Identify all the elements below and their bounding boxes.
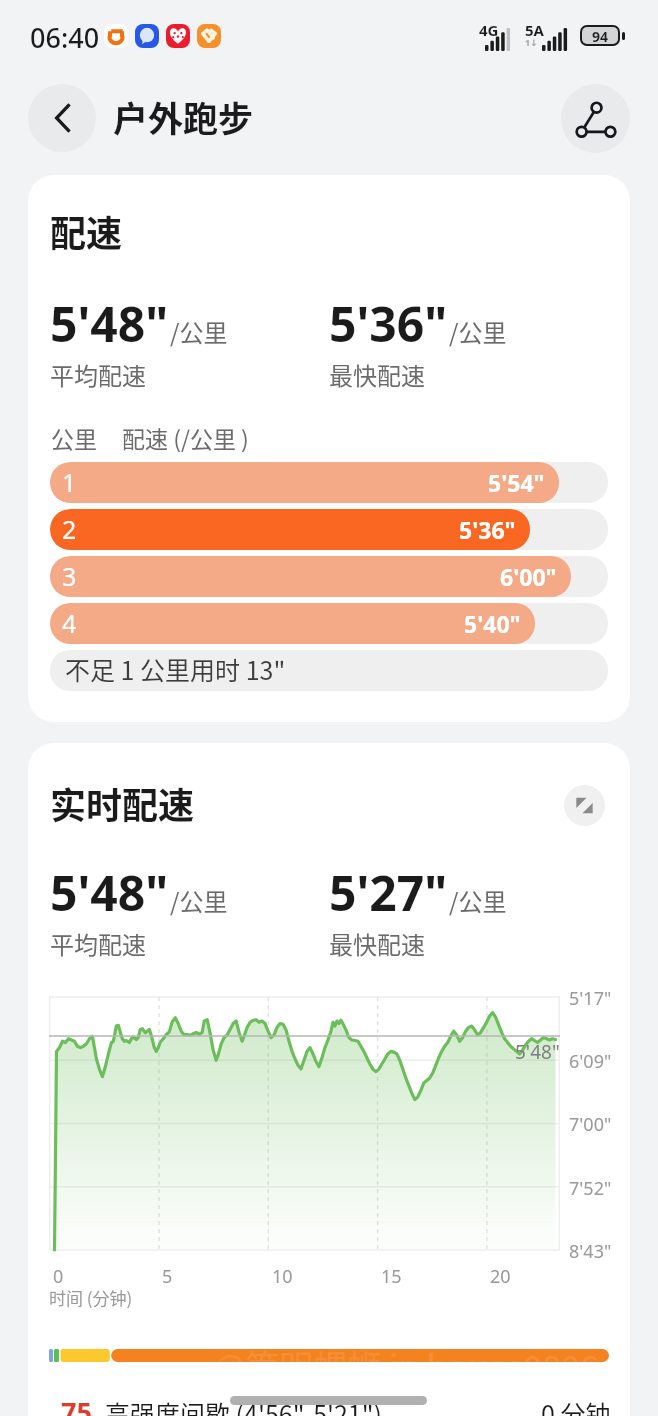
staticText: 6'09" xyxy=(569,1049,612,1074)
staticText: 5'48" xyxy=(515,1039,560,1065)
staticText: 配速 (/公里 ) xyxy=(122,421,249,454)
staticText: 94 xyxy=(592,27,609,44)
staticText: /公里 xyxy=(449,883,507,918)
staticText: 公里 xyxy=(51,421,97,454)
button[interactable]: 2 xyxy=(50,509,608,550)
staticText: 15 xyxy=(381,1264,402,1289)
staticText: 6'00" xyxy=(500,561,557,592)
staticText: 5'48" xyxy=(50,860,169,925)
staticText: 最快配速 xyxy=(329,357,425,392)
staticText: 7'00" xyxy=(569,1112,612,1137)
staticText: 06:40 xyxy=(30,19,100,56)
button[interactable]: Back xyxy=(28,84,96,152)
staticText: 8'43" xyxy=(569,1239,612,1264)
staticText: 5 xyxy=(162,1264,173,1289)
staticText: 5'27" xyxy=(329,860,448,925)
staticText: 20 xyxy=(490,1264,511,1289)
staticText: /公里 xyxy=(449,314,507,349)
staticText: 平均配速 xyxy=(50,357,146,392)
staticText: 3 xyxy=(62,559,77,593)
button[interactable]: Share xyxy=(561,84,630,153)
staticText: 高强度间歇 (4'56"-5'21") xyxy=(105,1395,383,1416)
staticText: /公里 xyxy=(170,314,228,349)
button[interactable]: 3 xyxy=(50,556,608,597)
staticText: 5'48" xyxy=(50,291,169,356)
button[interactable]: Expand chart xyxy=(564,785,605,826)
staticText: 0 分钟 xyxy=(541,1395,611,1416)
staticText: 不足 1 公里用时 13" xyxy=(65,651,286,687)
staticText: 1↓ xyxy=(525,36,538,48)
staticText: 配速 xyxy=(50,205,123,257)
staticText: 2 xyxy=(62,512,77,546)
staticText: 4G xyxy=(479,20,499,40)
staticText: 时间 (分钟) xyxy=(49,1285,133,1310)
staticText: 最快配速 xyxy=(329,926,425,961)
staticText: 平均配速 xyxy=(50,926,146,961)
staticText: 5'17" xyxy=(569,986,612,1011)
staticText: @筹明螺蛳 in house0806 xyxy=(213,1341,599,1390)
staticText: 0 xyxy=(53,1264,64,1289)
staticText: 5'36" xyxy=(459,514,516,545)
staticText: 4 xyxy=(62,606,77,640)
staticText: 1 xyxy=(62,465,77,499)
staticText: 5'40" xyxy=(464,608,521,639)
staticText: 75 xyxy=(61,1393,92,1416)
staticText: 5'54" xyxy=(488,467,545,498)
staticText: 7'52" xyxy=(569,1176,612,1201)
staticText: 5A xyxy=(525,20,544,40)
button[interactable]: 1 xyxy=(50,462,608,503)
staticText: 5'36" xyxy=(329,291,448,356)
staticText: /公里 xyxy=(170,883,228,918)
button[interactable]: 4 xyxy=(50,603,608,644)
staticText: 户外跑步 xyxy=(113,91,254,142)
staticText: 实时配速 xyxy=(50,777,195,829)
staticText: 10 xyxy=(272,1264,293,1289)
